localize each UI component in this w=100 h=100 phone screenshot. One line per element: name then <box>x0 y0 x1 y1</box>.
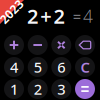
button[interactable]: 6 <box>51 57 71 77</box>
button[interactable]: 4 <box>4 57 24 77</box>
button[interactable]: 5 <box>28 57 48 77</box>
staticText: 2 <box>53 3 64 29</box>
button[interactable]: Equals <box>75 79 95 99</box>
button[interactable]: 3 <box>51 79 71 99</box>
staticText: 3 <box>57 79 65 99</box>
button[interactable]: 1 <box>4 79 24 99</box>
staticText: 2 <box>34 79 42 99</box>
staticText: 5 <box>34 57 42 77</box>
staticText: 4 <box>83 4 93 27</box>
button[interactable]: Subtract <box>28 35 48 55</box>
button[interactable]: Delete <box>75 35 95 55</box>
button[interactable]: Multiply <box>51 35 71 55</box>
staticText: 6 <box>57 57 65 77</box>
staticText: = <box>73 6 81 26</box>
staticText: 4 <box>10 57 18 77</box>
staticText: C <box>80 57 89 77</box>
staticText: 2023 <box>0 3 25 19</box>
staticText: + <box>40 3 51 29</box>
staticText: 2 <box>27 3 38 29</box>
staticText: 1 <box>10 79 18 99</box>
button[interactable]: Clear <box>75 57 95 77</box>
button[interactable]: 2 <box>28 79 48 99</box>
button[interactable]: Add <box>4 35 24 55</box>
